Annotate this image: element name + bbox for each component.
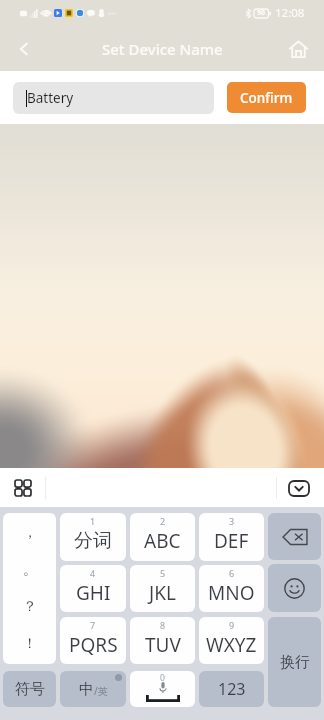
- staticText: 0: [160, 672, 165, 684]
- button[interactable]: Back: [4, 29, 44, 69]
- button[interactable]: Battery: [13, 82, 214, 114]
- button[interactable]: 6: [199, 565, 264, 612]
- staticText: 123: [218, 678, 246, 700]
- button[interactable]: [268, 564, 321, 612]
- staticText: 1: [90, 515, 96, 527]
- staticText: MNO: [208, 580, 255, 606]
- staticText: 符号: [15, 680, 45, 699]
- staticText: 中: [79, 680, 94, 699]
- staticText: ，: [23, 524, 37, 542]
- button[interactable]: 4: [60, 565, 126, 612]
- button[interactable]: 9: [199, 617, 264, 664]
- staticText: Battery: [27, 89, 74, 107]
- button[interactable]: 3: [199, 513, 264, 561]
- staticText: PQRS: [69, 632, 118, 658]
- staticText: 12:08: [275, 5, 305, 21]
- button[interactable]: Home: [278, 29, 318, 69]
- staticText: GHI: [76, 580, 111, 606]
- staticText: 换行: [280, 653, 310, 672]
- staticText: DEF: [214, 528, 249, 554]
- button[interactable]: [268, 513, 321, 560]
- staticText: 9: [229, 619, 235, 631]
- button[interactable]: 1: [60, 513, 126, 561]
- button[interactable]: Hide keyboard: [283, 472, 315, 504]
- staticText: /英: [94, 684, 108, 698]
- staticText: 6: [229, 567, 235, 579]
- staticText: ABC: [144, 528, 181, 554]
- staticText: 分词: [74, 529, 112, 553]
- staticText: ···: [108, 6, 117, 20]
- button[interactable]: Space: [130, 671, 195, 707]
- button[interactable]: Confirm: [227, 82, 306, 113]
- staticText: JKL: [149, 580, 176, 606]
- button[interactable]: 5: [130, 565, 195, 612]
- button[interactable]: 中: [60, 671, 126, 707]
- staticText: 7: [90, 619, 96, 631]
- button[interactable]: ，: [3, 513, 56, 664]
- staticText: 90: [257, 8, 266, 18]
- button[interactable]: 123: [199, 671, 264, 707]
- button[interactable]: 2: [130, 513, 195, 561]
- staticText: ！: [23, 635, 37, 653]
- staticText: 2: [160, 515, 166, 527]
- staticText: 8: [160, 619, 166, 631]
- button[interactable]: 8: [130, 617, 195, 664]
- staticText: 5: [160, 567, 166, 579]
- staticText: Set Device Name: [102, 39, 223, 59]
- staticText: 。: [23, 561, 37, 579]
- staticText: ？: [23, 598, 37, 616]
- button[interactable]: 符号: [3, 671, 56, 707]
- staticText: 3: [229, 515, 235, 527]
- button[interactable]: 换行: [268, 617, 321, 707]
- staticText: TUV: [145, 632, 181, 658]
- staticText: 4: [90, 567, 96, 579]
- staticText: Confirm: [240, 89, 293, 107]
- staticText: WXYZ: [206, 632, 257, 658]
- button[interactable]: 7: [60, 617, 126, 664]
- button[interactable]: Keyboard menu: [8, 473, 38, 503]
